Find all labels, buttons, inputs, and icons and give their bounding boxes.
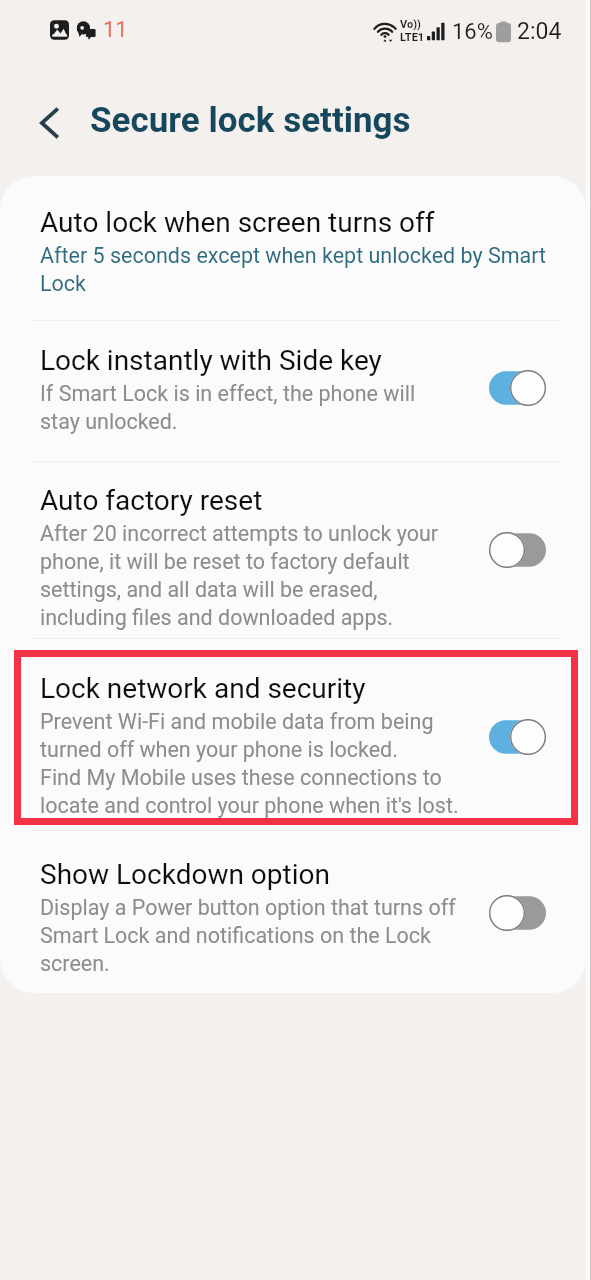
button[interactable]: Turn on Show Lockdown option	[484, 890, 550, 936]
staticText: After 5 seconds except when kept unlocke…	[40, 241, 547, 297]
button[interactable]: Lock instantly with Side key	[0, 321, 586, 461]
button[interactable]: Auto factory reset	[0, 462, 586, 638]
staticText: 2:04	[517, 18, 562, 45]
button[interactable]: Turn off Lock network and security	[484, 714, 550, 760]
staticText: Show Lockdown option	[40, 857, 330, 891]
button[interactable]: Auto lock when screen turns off	[0, 176, 586, 320]
button[interactable]: Turn off Lock instantly with Side key	[484, 365, 550, 411]
staticText: Secure lock settings	[90, 100, 411, 141]
staticText: Vo))	[400, 18, 421, 31]
button[interactable]: Navigate up	[24, 97, 76, 149]
staticText: After 20 incorrect attempts to unlock yo…	[40, 519, 439, 631]
staticText: Prevent Wi-Fi and mobile data from being…	[40, 707, 459, 819]
staticText: Lock network and security	[40, 671, 366, 705]
staticText: If Smart Lock is in effect, the phone wi…	[40, 379, 416, 435]
staticText: 11	[103, 17, 128, 43]
button[interactable]: Show Lockdown option	[0, 831, 586, 993]
staticText: Auto lock when screen turns off	[40, 205, 435, 239]
staticText: 16%	[452, 19, 493, 45]
staticText: Display a Power button option that turns…	[40, 893, 456, 977]
button[interactable]: Lock network and security	[0, 639, 586, 830]
staticText: Auto factory reset	[40, 483, 263, 517]
staticText: Lock instantly with Side key	[40, 343, 382, 377]
button[interactable]: Turn on Auto factory reset	[484, 527, 550, 573]
staticText: LTE1	[400, 31, 425, 44]
